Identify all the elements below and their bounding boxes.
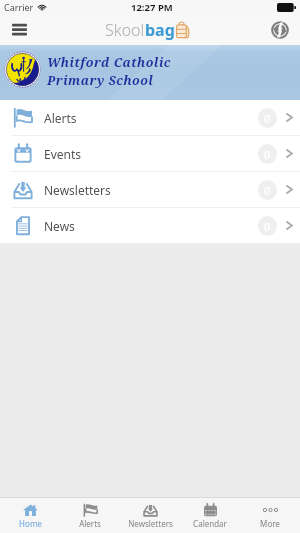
button[interactable]: Events: [0, 136, 300, 171]
staticText: Carrier: [4, 1, 34, 13]
staticText: 0: [264, 111, 271, 126]
button[interactable]: More: [240, 498, 300, 533]
staticText: Events: [44, 146, 82, 162]
staticText: More: [260, 518, 280, 529]
button[interactable]: Menu: [0, 14, 38, 45]
staticText: News: [44, 218, 75, 234]
button[interactable]: Alerts: [60, 498, 120, 533]
staticText: Whitford Catholic: [47, 54, 171, 71]
staticText: Primary School: [47, 72, 154, 89]
button[interactable]: Newsletters: [0, 172, 300, 207]
staticText: Home: [19, 518, 42, 529]
staticText: Calendar: [193, 518, 227, 529]
staticText: 0: [264, 147, 271, 162]
button[interactable]: Newsletters: [120, 498, 180, 533]
staticText: Skool: [105, 19, 145, 41]
staticText: bag: [145, 19, 175, 41]
staticText: Alerts: [44, 110, 77, 126]
staticText: 0: [264, 219, 271, 234]
button[interactable]: Home: [0, 498, 60, 533]
button[interactable]: Calendar: [180, 498, 240, 533]
button[interactable]: Refresh: [260, 14, 300, 45]
staticText: Newsletters: [128, 518, 173, 529]
staticText: 12:27 PM: [131, 1, 173, 14]
button[interactable]: News: [0, 208, 300, 243]
staticText: Newsletters: [44, 182, 111, 198]
staticText: Alerts: [79, 518, 101, 529]
button[interactable]: Alerts: [0, 100, 300, 135]
staticText: 0: [264, 183, 271, 198]
